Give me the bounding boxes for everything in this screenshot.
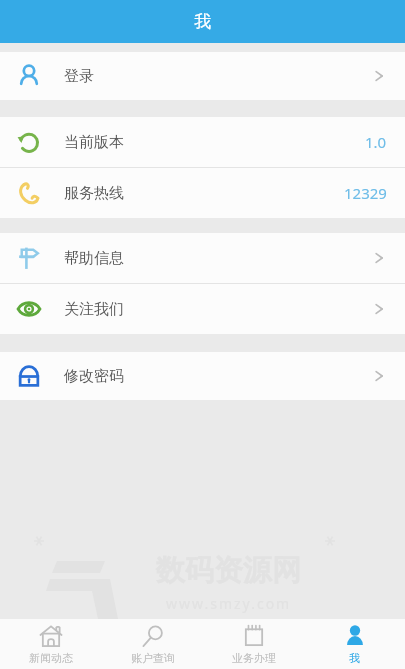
button[interactable]: 服务热线 bbox=[0, 168, 405, 218]
staticText: 账户查询 bbox=[131, 651, 175, 665]
staticText: 1.0 bbox=[365, 132, 387, 152]
staticText: 我 bbox=[349, 651, 360, 665]
staticText: 我 bbox=[194, 11, 211, 32]
staticText: 帮助信息 bbox=[64, 249, 124, 268]
staticText: 新闻动态 bbox=[29, 651, 73, 665]
staticText: 登录 bbox=[64, 67, 94, 86]
staticText: 12329 bbox=[344, 183, 387, 203]
button[interactable]: 关注我们 bbox=[0, 284, 405, 334]
staticText: 当前版本 bbox=[64, 133, 124, 152]
staticText: 服务热线 bbox=[64, 184, 124, 203]
button[interactable]: 账户查询 bbox=[102, 619, 203, 669]
button[interactable]: 我 bbox=[304, 619, 405, 669]
staticText: 修改密码 bbox=[64, 367, 124, 386]
staticText: 关注我们 bbox=[64, 300, 124, 319]
staticText: 数码资源网 bbox=[156, 552, 301, 589]
button[interactable]: 业务办理 bbox=[203, 619, 304, 669]
button[interactable]: 登录 bbox=[0, 52, 405, 100]
button[interactable]: 修改密码 bbox=[0, 352, 405, 400]
button[interactable]: 帮助信息 bbox=[0, 233, 405, 283]
button[interactable]: 当前版本 bbox=[0, 117, 405, 167]
button[interactable]: 新闻动态 bbox=[0, 619, 102, 669]
staticText: 业务办理 bbox=[232, 651, 276, 665]
